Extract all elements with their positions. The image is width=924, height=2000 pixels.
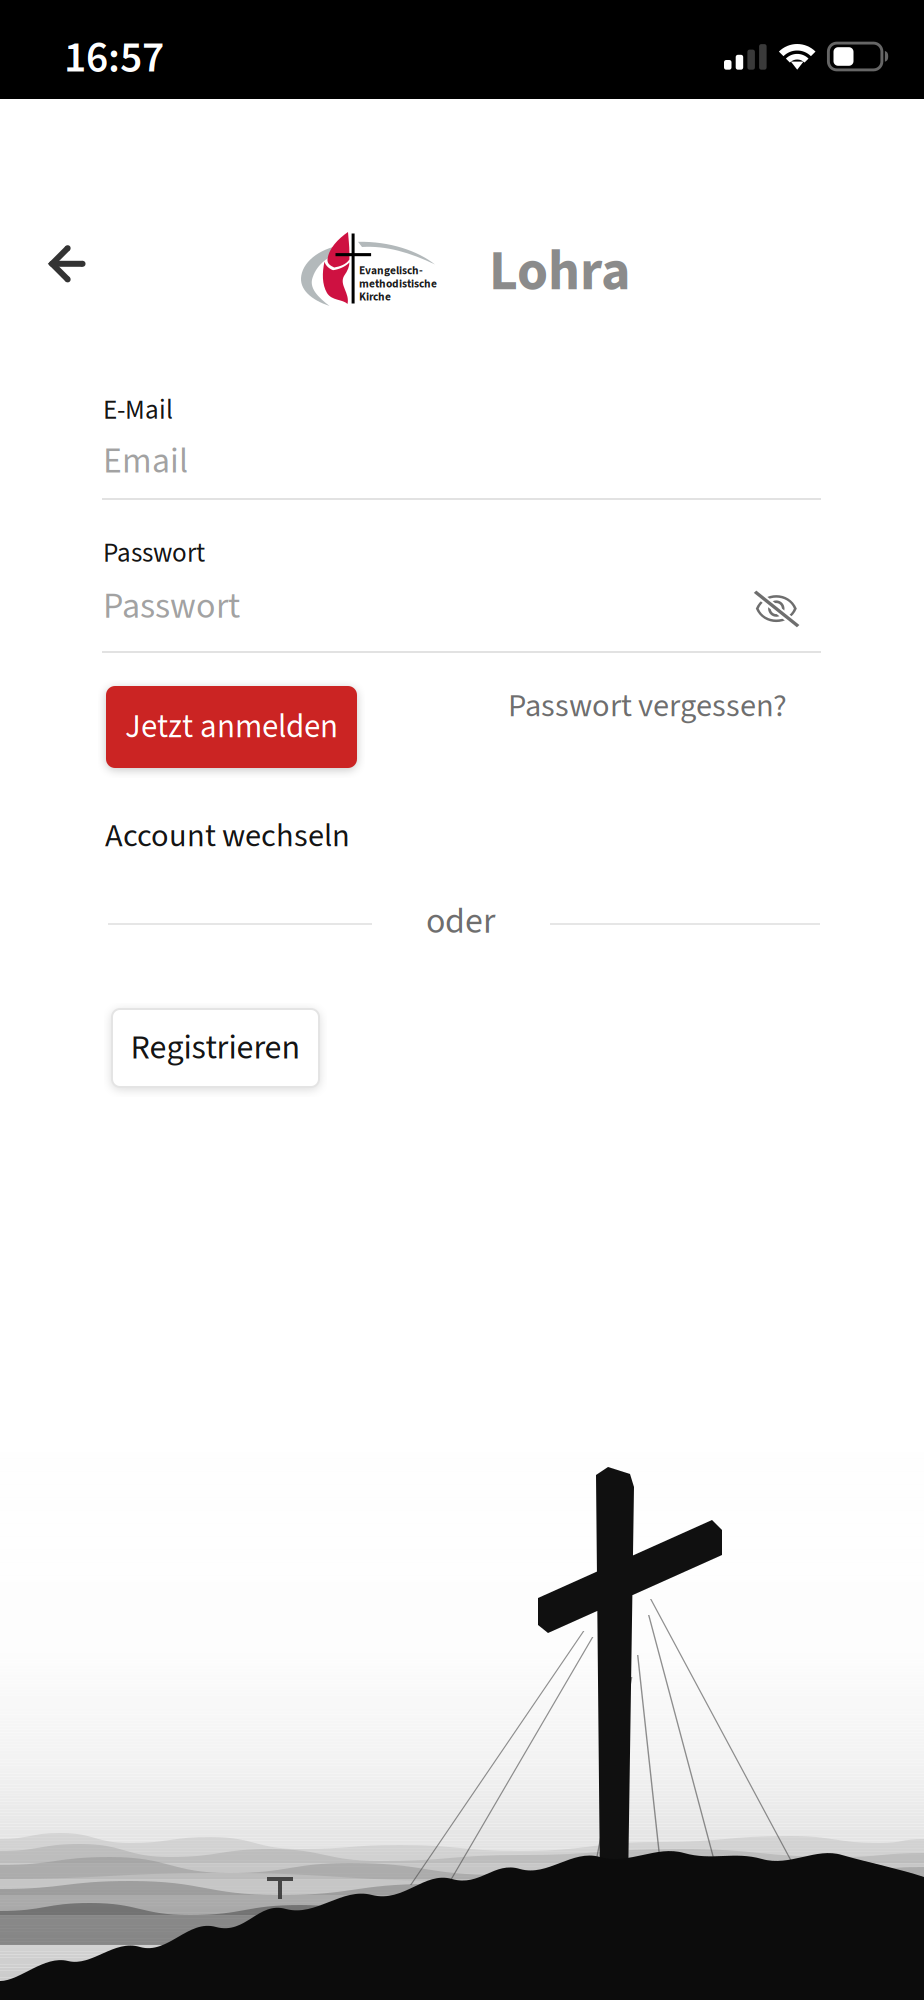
staticText: oder xyxy=(426,896,495,947)
staticText: Passwort vergessen? xyxy=(508,683,787,729)
staticText: Passwort xyxy=(103,581,240,632)
staticText: Email xyxy=(103,436,188,487)
staticText: Account wechseln xyxy=(105,813,350,859)
staticText: E-Mail xyxy=(103,391,173,430)
staticText: Passwort xyxy=(103,534,205,572)
staticText: Lohra xyxy=(489,232,631,312)
staticText: Kirche xyxy=(359,289,391,305)
staticText: methodistische xyxy=(359,276,437,292)
button[interactable]: Passwort vergessen? xyxy=(0,0,279,46)
staticText: Jetzt anmelden xyxy=(125,704,338,750)
button[interactable]: Back xyxy=(0,0,86,84)
button[interactable]: Registrieren xyxy=(0,0,207,78)
staticText: Registrieren xyxy=(130,1024,300,1072)
button[interactable]: Account wechseln xyxy=(0,0,245,46)
staticText: 16:57 xyxy=(64,27,164,89)
button[interactable]: Show password xyxy=(0,0,75,64)
button[interactable]: Jetzt anmelden xyxy=(0,0,251,82)
staticText: Evangelisch- xyxy=(359,263,423,279)
